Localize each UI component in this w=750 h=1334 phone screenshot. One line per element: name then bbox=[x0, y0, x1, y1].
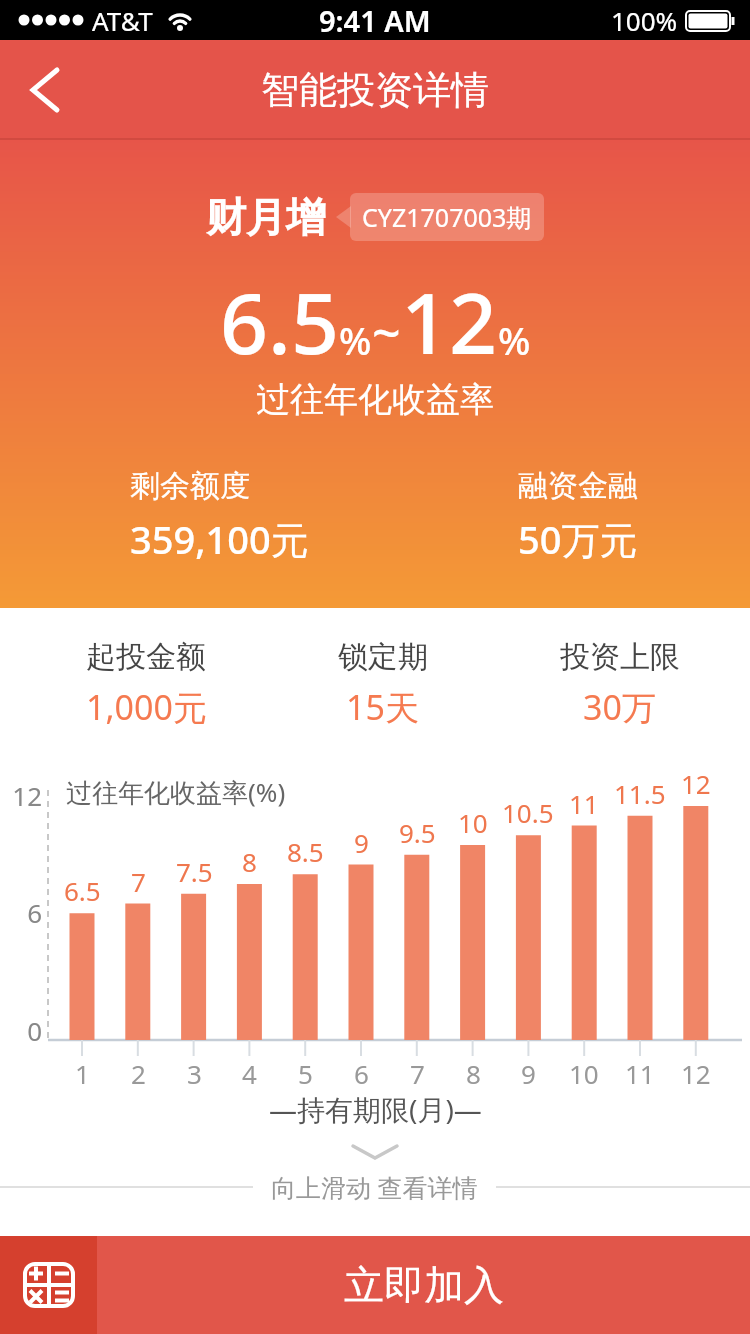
staticText: 4 bbox=[242, 1056, 257, 1091]
button[interactable]: 立即加入 bbox=[97, 1236, 750, 1334]
staticText: 6.5 bbox=[64, 873, 101, 908]
staticText: 财月增 bbox=[206, 192, 326, 242]
staticText: 过往年化收益率(%) bbox=[66, 774, 286, 810]
staticText: 3 bbox=[187, 1056, 202, 1091]
staticText: 9.5 bbox=[399, 815, 436, 850]
staticText: 投资上限 bbox=[560, 638, 680, 676]
staticText: 12 bbox=[681, 766, 711, 801]
button[interactable] bbox=[14, 60, 74, 120]
staticText: 11 bbox=[625, 1056, 655, 1091]
staticText: 起投金额 bbox=[86, 638, 206, 676]
staticText: 12 bbox=[12, 778, 42, 813]
staticText: 50万元 bbox=[518, 513, 638, 565]
staticText: 剩余额度 bbox=[130, 467, 250, 505]
staticText: 10.5 bbox=[502, 795, 554, 830]
staticText: 359,100元 bbox=[130, 513, 309, 565]
staticText: 15天 bbox=[346, 684, 419, 730]
staticText: 1 bbox=[75, 1056, 90, 1091]
staticText: 9:41 AM bbox=[319, 1, 431, 40]
staticText: 12 bbox=[401, 264, 498, 378]
staticText: 100% bbox=[611, 3, 678, 38]
staticText: CYZ1707003期 bbox=[362, 200, 532, 234]
staticText: 融资金融 bbox=[518, 467, 638, 505]
staticText: 7 bbox=[410, 1056, 425, 1091]
staticText: 6.5 bbox=[220, 264, 339, 378]
staticText: 7 bbox=[131, 864, 146, 899]
staticText: 10 bbox=[569, 1056, 599, 1091]
button[interactable]: 向上滑动 查看详情 bbox=[0, 1170, 750, 1204]
staticText: 8 bbox=[466, 1056, 481, 1091]
staticText: % bbox=[339, 314, 372, 366]
staticText: 9 bbox=[521, 1056, 536, 1091]
staticText: 10 bbox=[458, 805, 488, 840]
button[interactable] bbox=[0, 1236, 97, 1334]
staticText: 8 bbox=[242, 844, 257, 879]
staticText: 30万 bbox=[583, 684, 656, 730]
staticText: 8.5 bbox=[287, 834, 324, 869]
staticText: 1,000元 bbox=[86, 684, 207, 730]
staticText: 过往年化收益率 bbox=[256, 378, 494, 421]
staticText: 0 bbox=[27, 1013, 42, 1048]
staticText: 锁定期 bbox=[338, 638, 428, 676]
staticText: 7.5 bbox=[176, 854, 213, 889]
staticText: ~ bbox=[372, 298, 401, 366]
staticText: —持有期限(月)— bbox=[269, 1090, 482, 1128]
staticText: 12 bbox=[681, 1056, 711, 1091]
staticText: 6 bbox=[27, 895, 42, 930]
staticText: AT&T bbox=[92, 3, 153, 38]
staticText: 11 bbox=[569, 786, 599, 821]
staticText: 6 bbox=[354, 1056, 369, 1091]
staticText: 立即加入 bbox=[344, 1260, 504, 1310]
staticText: 2 bbox=[131, 1056, 146, 1091]
staticText: 智能投资详情 bbox=[261, 66, 489, 114]
staticText: 向上滑动 查看详情 bbox=[271, 1170, 478, 1204]
staticText: 5 bbox=[298, 1056, 313, 1091]
staticText: 9 bbox=[354, 825, 369, 860]
staticText: 11.5 bbox=[614, 776, 666, 811]
staticText: % bbox=[498, 314, 531, 366]
